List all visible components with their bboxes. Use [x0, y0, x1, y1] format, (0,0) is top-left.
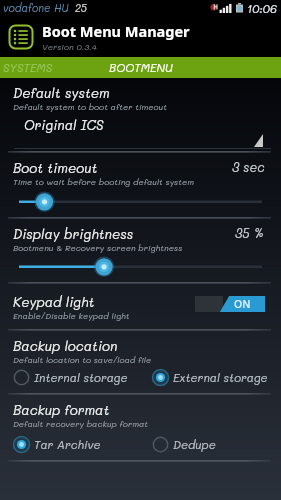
- button[interactable]: Boot Menu Manager icon: [8, 24, 34, 50]
- staticText: External storage: [173, 370, 268, 385]
- button[interactable]: SYSTEMS: [0, 57, 84, 78]
- button[interactable]: BOOTMENU: [84, 57, 197, 78]
- staticText: Bootmenu & Recovery screen brightness: [13, 242, 183, 253]
- staticText: Original ICS: [24, 116, 104, 133]
- button[interactable]: Dedupe: [152, 436, 281, 453]
- staticText: SYSTEMS: [3, 60, 53, 75]
- staticText: Tar Archive: [34, 437, 101, 452]
- staticText: Backup format: [13, 401, 110, 418]
- staticText: Keypad light: [13, 293, 95, 310]
- button[interactable]: Default system: [0, 78, 281, 151]
- staticText: 35 %: [235, 225, 265, 241]
- staticText: vodafone HU: [3, 1, 69, 15]
- staticText: ON: [234, 297, 251, 311]
- staticText: Backup location: [13, 337, 118, 354]
- staticText: Default recovery backup format: [13, 418, 148, 429]
- button[interactable]: Boot timeout: [0, 153, 281, 217]
- staticText: 25: [75, 1, 87, 15]
- button[interactable]: Display brightness: [0, 219, 281, 282]
- staticText: Default system to boot after timeout: [13, 101, 167, 112]
- staticText: 10:06: [247, 1, 277, 16]
- staticText: Time to wait before booting default syst…: [13, 176, 194, 187]
- staticText: 3 sec: [232, 159, 265, 175]
- button[interactable]: Keypad light toggle, on: [195, 296, 265, 312]
- staticText: Version 0.3.4: [42, 41, 97, 52]
- staticText: Display brightness: [13, 225, 134, 242]
- staticText: Dedupe: [173, 437, 216, 452]
- button[interactable]: Tar Archive: [13, 436, 140, 453]
- button[interactable]: Internal storage: [13, 369, 140, 386]
- staticText: Enable/Disable keypad light: [13, 310, 130, 321]
- staticText: BOOTMENU: [109, 60, 173, 75]
- staticText: Internal storage: [34, 370, 128, 385]
- staticText: Default location to save/load file: [13, 354, 152, 365]
- staticText: Boot Menu Manager: [42, 21, 190, 41]
- staticText: Default system: [13, 84, 110, 101]
- button[interactable]: External storage: [152, 369, 281, 386]
- staticText: Boot timeout: [13, 159, 98, 176]
- button[interactable]: Keypad light: [0, 284, 281, 329]
